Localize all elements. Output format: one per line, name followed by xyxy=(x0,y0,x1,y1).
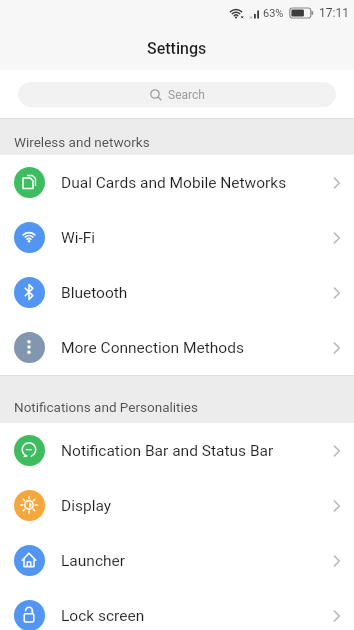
button[interactable]: Notification Bar and Status Bar xyxy=(0,423,354,478)
staticText: Settings xyxy=(147,39,207,58)
button[interactable]: More Connection Methods xyxy=(0,320,354,375)
staticText: Dual Cards and Mobile Networks xyxy=(61,174,287,192)
staticText: Wireless and networks xyxy=(14,134,150,150)
staticText: Lock screen xyxy=(61,607,145,625)
staticText: 63% xyxy=(263,7,284,20)
button[interactable]: Lock screen xyxy=(0,588,354,630)
staticText: Bluetooth xyxy=(61,284,128,302)
staticText: More Connection Methods xyxy=(61,339,244,357)
staticText: Search xyxy=(168,88,205,102)
staticText: Notification Bar and Status Bar xyxy=(61,442,274,460)
staticText: Wi-Fi xyxy=(61,229,96,247)
button[interactable]: Dual Cards and Mobile Networks xyxy=(0,155,354,210)
button[interactable]: Display xyxy=(0,478,354,533)
staticText: Launcher xyxy=(61,552,126,570)
button[interactable]: Launcher xyxy=(0,533,354,588)
button[interactable]: Search xyxy=(18,82,336,107)
button[interactable]: Bluetooth xyxy=(0,265,354,320)
button[interactable]: Wi-Fi xyxy=(0,210,354,265)
staticText: 17:11 xyxy=(319,6,349,20)
staticText: Notifications and Personalities xyxy=(14,399,198,415)
staticText: Display xyxy=(61,497,112,515)
